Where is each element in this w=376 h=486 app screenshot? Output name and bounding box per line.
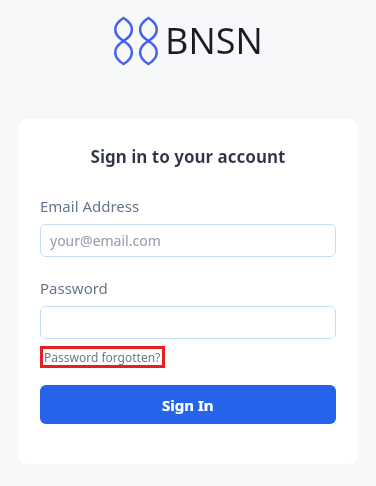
staticText: your@email.com: [50, 231, 161, 250]
button[interactable]: your@email.com: [40, 224, 336, 257]
staticText: Password forgotten?: [44, 349, 161, 365]
staticText: Sign in to your account: [40, 145, 336, 168]
button[interactable]: Sign In: [40, 385, 336, 424]
button[interactable]: Password forgotten?: [40, 346, 165, 368]
button[interactable]: [40, 306, 336, 339]
staticText: Password: [40, 278, 108, 298]
staticText: Email Address: [40, 196, 140, 216]
staticText: Sign In: [162, 395, 214, 415]
staticText: BNSN: [165, 16, 263, 65]
